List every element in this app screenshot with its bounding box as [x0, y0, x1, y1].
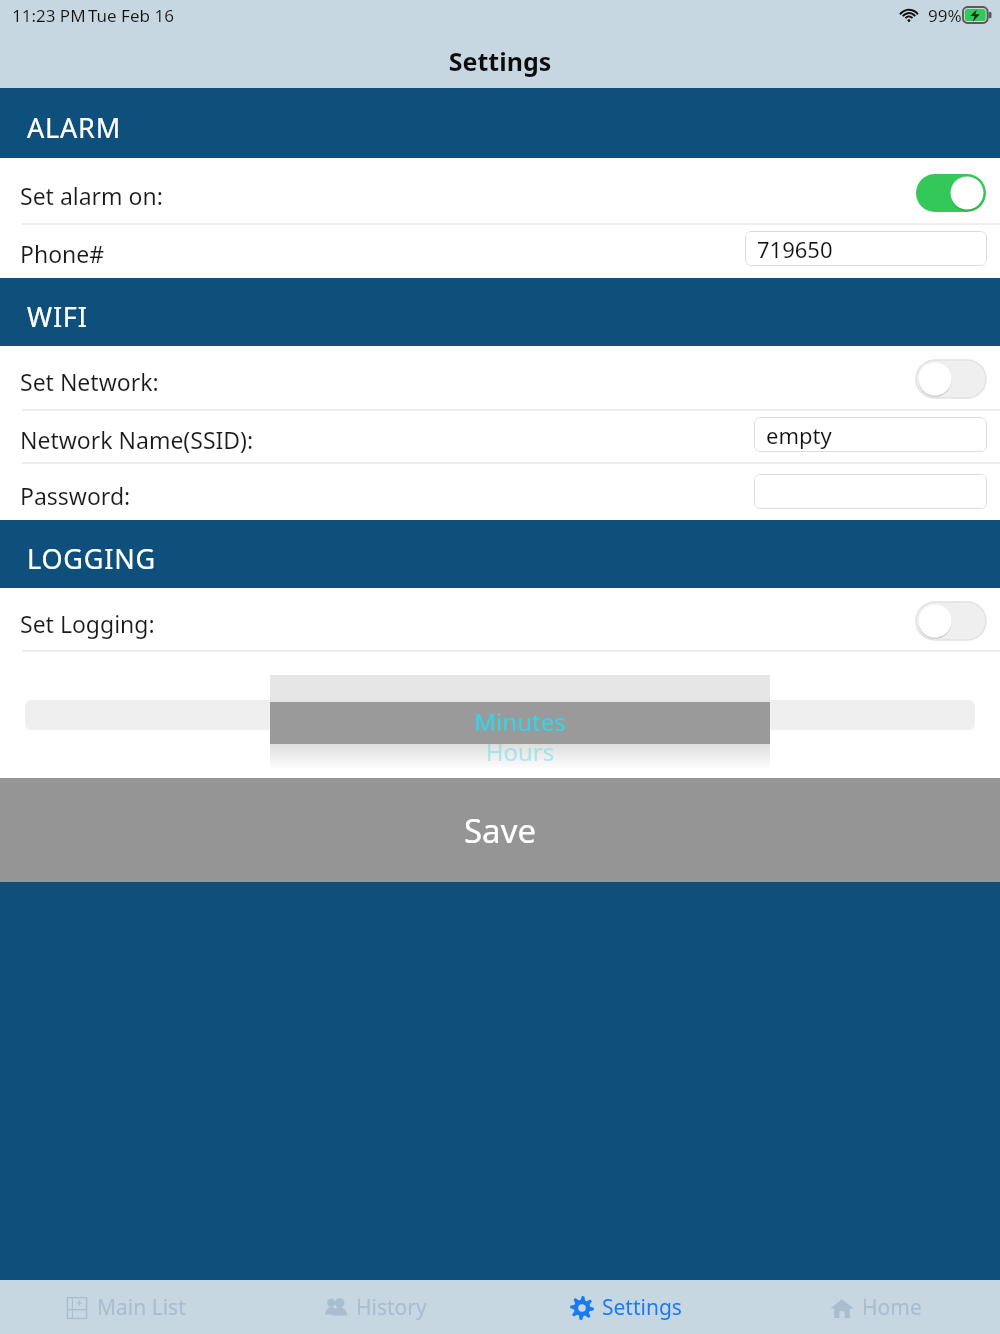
staticText: Save — [464, 808, 537, 853]
button[interactable] — [754, 474, 987, 509]
staticText: Phone# — [20, 238, 105, 269]
staticText: Set Network: — [20, 366, 159, 397]
staticText: empty — [766, 420, 832, 450]
button[interactable]: Network Name(SSID): — [0, 411, 1000, 464]
staticText: 99% — [928, 4, 962, 27]
staticText: Hours — [270, 735, 770, 768]
button[interactable]: Save — [0, 778, 1000, 882]
button[interactable]: Password: — [0, 464, 1000, 520]
button[interactable]: 719650 — [745, 231, 987, 266]
staticText: Password: — [20, 480, 131, 511]
button[interactable]: Settings — [500, 1280, 750, 1334]
button[interactable]: Phone# — [0, 225, 1000, 278]
button[interactable]: Toggle on — [916, 174, 986, 212]
button[interactable]: Set alarm on: — [0, 158, 1000, 225]
button[interactable]: Set Logging: — [0, 588, 1000, 650]
staticText: Set alarm on: — [20, 180, 163, 211]
staticText: 719650 — [757, 234, 833, 264]
button[interactable]: History — [250, 1280, 500, 1334]
button[interactable]: Main List — [0, 1280, 250, 1334]
button[interactable]: Home — [750, 1280, 1000, 1334]
staticText: 11:23 PM — [12, 4, 86, 27]
staticText: Settings — [602, 1293, 682, 1322]
staticText: LOGGING — [27, 540, 156, 577]
button[interactable]: Set Network: — [0, 346, 1000, 411]
staticText: Main List — [97, 1293, 186, 1322]
button[interactable]: Toggle off — [916, 360, 986, 398]
staticText: Network Name(SSID): — [20, 424, 254, 455]
staticText: Home — [862, 1293, 922, 1322]
staticText: Minutes — [270, 705, 770, 738]
staticText: Tue Feb 16 — [88, 4, 174, 27]
button[interactable]: empty — [754, 417, 987, 452]
staticText: ALARM — [27, 109, 121, 146]
staticText: Settings — [0, 44, 1000, 78]
staticText: WIFI — [27, 298, 88, 335]
staticText: Set Logging: — [20, 608, 155, 639]
button[interactable]: Toggle off — [916, 602, 986, 640]
staticText: History — [356, 1293, 427, 1322]
